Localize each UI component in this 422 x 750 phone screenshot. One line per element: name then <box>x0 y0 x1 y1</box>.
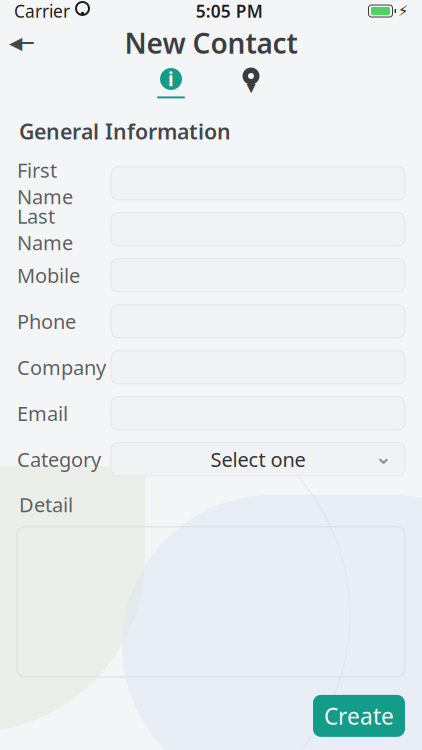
staticText: ⚡︎ <box>398 3 408 19</box>
staticText: i <box>168 67 174 91</box>
staticText: ◀ <box>9 33 22 53</box>
staticText: First Name <box>17 157 73 210</box>
staticText: Email <box>17 400 68 427</box>
staticText: New Contact <box>124 24 297 62</box>
staticText: Company <box>17 354 106 381</box>
staticText: Mobile <box>17 262 80 289</box>
staticText: Last Name <box>17 203 73 256</box>
staticText: Carrier <box>14 0 70 22</box>
staticText: 5:05 PM <box>196 0 263 22</box>
staticText: Detail <box>19 491 73 518</box>
staticText: ▼ <box>246 81 255 94</box>
button[interactable]: Back <box>0 23 44 63</box>
button[interactable]: General Information <box>148 67 194 98</box>
staticText: Create <box>324 701 394 731</box>
staticText: General Information <box>19 117 231 145</box>
staticText: ⌄ <box>375 445 392 468</box>
button[interactable]: Location <box>228 67 274 98</box>
button[interactable]: Select one <box>111 443 405 476</box>
staticText: Phone <box>17 308 76 335</box>
button[interactable]: Create <box>313 695 405 737</box>
staticText: Category <box>17 446 101 473</box>
staticText: Select one <box>210 446 305 473</box>
